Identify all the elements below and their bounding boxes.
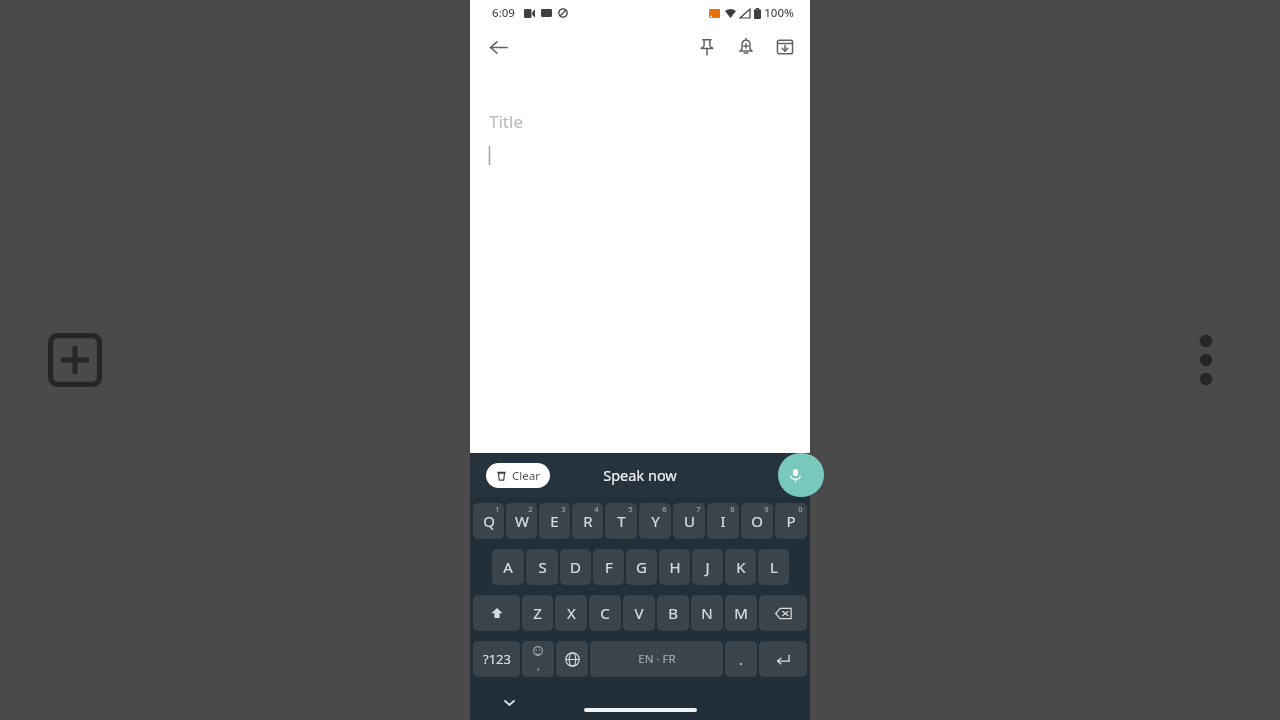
staticText: , xyxy=(537,658,540,673)
staticText: G xyxy=(636,557,647,577)
button[interactable]: Enter xyxy=(759,641,807,677)
button[interactable]: F xyxy=(593,549,624,585)
button[interactable]: I xyxy=(707,503,739,539)
staticText: F xyxy=(605,557,613,577)
staticText: Title xyxy=(489,110,523,133)
button[interactable]: Back xyxy=(480,29,516,65)
button[interactable]: Title xyxy=(489,110,810,133)
staticText: 2 xyxy=(528,504,533,514)
button[interactable]: X xyxy=(555,595,587,631)
staticText: Edited 6:07 PM xyxy=(600,696,681,712)
button[interactable]: H xyxy=(659,549,690,585)
staticText: . xyxy=(739,650,743,669)
staticText: P xyxy=(786,511,796,531)
button[interactable]: J xyxy=(692,549,723,585)
staticText: 1 xyxy=(495,504,500,514)
button[interactable]: L xyxy=(758,549,789,585)
staticText: 0 xyxy=(798,504,803,514)
button[interactable]: A xyxy=(492,549,524,585)
button[interactable]: Reminder xyxy=(729,30,763,64)
staticText: X xyxy=(567,603,576,623)
staticText: 7 xyxy=(696,504,701,514)
button[interactable]: Microphone xyxy=(778,453,824,497)
button[interactable]: Add xyxy=(48,333,102,387)
button[interactable]: Y xyxy=(639,503,671,539)
button[interactable]: More options xyxy=(1194,328,1218,392)
staticText: D xyxy=(570,557,581,577)
staticText: S xyxy=(538,557,547,577)
button[interactable]: M xyxy=(725,595,757,631)
button[interactable]: Pin xyxy=(690,30,724,64)
button[interactable]: W xyxy=(506,503,537,539)
staticText: Z xyxy=(533,603,542,623)
button[interactable]: Period xyxy=(725,641,757,677)
button[interactable]: Symbols xyxy=(473,641,520,677)
button[interactable]: Z xyxy=(522,595,553,631)
button[interactable]: Add item xyxy=(479,690,507,718)
button[interactable]: C xyxy=(589,595,621,631)
staticText: U xyxy=(684,511,695,531)
staticText: Y xyxy=(651,511,660,531)
staticText: H xyxy=(669,557,681,577)
staticText: 6:09 xyxy=(492,5,515,21)
staticText: 9 xyxy=(764,504,769,514)
staticText: T xyxy=(617,511,626,531)
staticText: I xyxy=(720,511,726,531)
button[interactable]: Shift xyxy=(473,595,520,631)
staticText: K xyxy=(736,557,746,577)
button[interactable]: Hide keyboard xyxy=(496,689,522,715)
staticText: E xyxy=(550,511,559,531)
staticText: A xyxy=(503,557,513,577)
button[interactable]: Q xyxy=(473,503,504,539)
button[interactable]: P xyxy=(775,503,807,539)
staticText: 3 xyxy=(561,504,566,514)
staticText: 4 xyxy=(594,504,599,514)
button[interactable]: N xyxy=(691,595,723,631)
staticText: 100% xyxy=(764,5,794,21)
staticText: C xyxy=(600,603,610,623)
button[interactable]: Emoji and comma xyxy=(522,641,554,677)
staticText: L xyxy=(770,557,778,577)
button[interactable]: O xyxy=(741,503,773,539)
staticText: EN · FR xyxy=(638,651,676,667)
button[interactable]: T xyxy=(605,503,637,539)
staticText: B xyxy=(668,603,678,623)
staticText: M xyxy=(734,603,748,623)
button[interactable]: D xyxy=(560,549,591,585)
button[interactable]: Archive xyxy=(768,30,802,64)
button[interactable]: Backspace xyxy=(759,595,807,631)
button[interactable]: Space xyxy=(590,641,723,677)
staticText: V xyxy=(634,603,644,623)
button[interactable]: R xyxy=(572,503,603,539)
button[interactable]: K xyxy=(725,549,756,585)
staticText: Q xyxy=(483,511,495,531)
staticText: 6 xyxy=(662,504,667,514)
button[interactable]: U xyxy=(673,503,705,539)
staticText: N xyxy=(701,603,713,623)
staticText: ?123 xyxy=(483,650,511,668)
button[interactable]: V xyxy=(623,595,655,631)
staticText: W xyxy=(515,511,529,531)
staticText: 8 xyxy=(730,504,735,514)
staticText: J xyxy=(705,557,710,577)
staticText: Speak now xyxy=(603,465,677,485)
button[interactable]: Clear xyxy=(486,463,550,488)
button[interactable] xyxy=(489,145,810,167)
staticText: O xyxy=(751,511,763,531)
button[interactable]: S xyxy=(526,549,558,585)
staticText: 5 xyxy=(628,504,633,514)
staticText: Clear xyxy=(512,468,540,484)
button[interactable]: B xyxy=(657,595,689,631)
staticText: R xyxy=(583,511,593,531)
button[interactable]: E xyxy=(539,503,570,539)
button[interactable]: G xyxy=(626,549,657,585)
button[interactable]: Change language xyxy=(556,641,588,677)
